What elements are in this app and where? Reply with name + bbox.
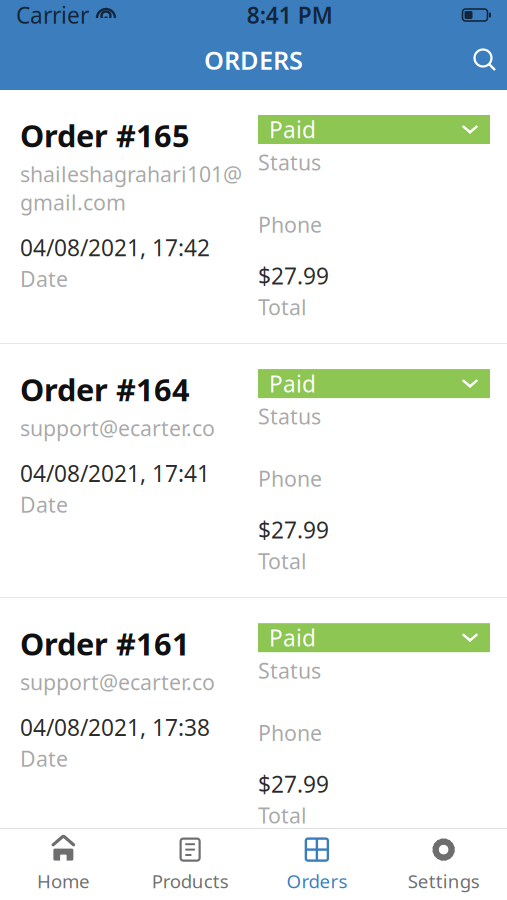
button[interactable]: Order #165 xyxy=(0,90,507,343)
button[interactable]: Paid xyxy=(258,623,490,652)
staticText: Complete xyxy=(269,877,372,900)
button[interactable]: Search xyxy=(463,38,507,82)
staticText: shaileshagrahari101@gmail.com xyxy=(20,160,242,216)
staticText: ORDERS xyxy=(204,43,303,77)
button[interactable]: Order #159 xyxy=(0,852,507,900)
button[interactable]: Order #164 xyxy=(0,344,507,597)
staticText: $27.99 xyxy=(258,515,329,545)
staticText: Order #164 xyxy=(20,369,190,410)
staticText: Products xyxy=(152,869,229,893)
button[interactable]: Paid xyxy=(258,115,490,144)
staticText: $27.99 xyxy=(258,769,329,799)
staticText: Order #161 xyxy=(20,623,190,664)
staticText: Status xyxy=(258,402,321,430)
staticText: $27.99 xyxy=(258,261,329,291)
staticText: 04/08/2021, 17:41 xyxy=(20,458,210,488)
button[interactable]: Home xyxy=(0,827,127,900)
staticText: Paid xyxy=(269,623,316,653)
staticText: Order #159 xyxy=(20,877,190,900)
staticText: Status xyxy=(258,148,321,176)
staticText: 8:41 PM xyxy=(247,0,333,30)
staticText: 04/08/2021, 17:38 xyxy=(20,712,210,742)
button[interactable]: Paid xyxy=(258,369,490,398)
staticText: Phone xyxy=(258,210,322,239)
button[interactable]: Products xyxy=(127,827,254,900)
staticText: Phone xyxy=(258,464,322,493)
staticText: Settings xyxy=(408,869,480,893)
staticText: Date xyxy=(20,490,68,518)
button[interactable]: Complete xyxy=(258,877,490,900)
staticText: support@ecarter.co xyxy=(20,668,215,696)
button[interactable]: Settings xyxy=(380,827,507,900)
staticText: Date xyxy=(20,264,68,293)
staticText: Carrier xyxy=(16,0,89,30)
staticText: Paid xyxy=(269,368,316,399)
staticText: Paid xyxy=(269,114,316,144)
staticText: Order #165 xyxy=(20,115,190,156)
staticText: Total xyxy=(258,293,307,321)
staticText: Total xyxy=(258,547,307,575)
button[interactable]: Order #161 xyxy=(0,598,507,851)
button[interactable]: Orders xyxy=(253,827,380,900)
staticText: Home xyxy=(37,869,90,893)
staticText: 04/08/2021, 17:42 xyxy=(20,232,210,262)
staticText: support@ecarter.co xyxy=(20,414,215,442)
staticText: Status xyxy=(258,656,321,684)
staticText: Date xyxy=(20,744,68,773)
staticText: Total xyxy=(258,801,307,829)
staticText: Phone xyxy=(258,718,322,747)
staticText: Orders xyxy=(286,869,347,893)
